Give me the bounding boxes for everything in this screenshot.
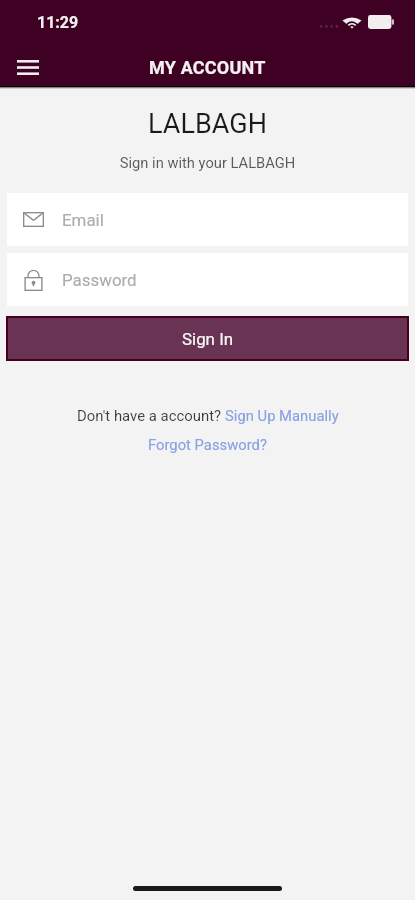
staticText: Password — [62, 270, 137, 290]
staticText: 11:29 — [37, 13, 79, 32]
button[interactable]: Sign In — [8, 318, 407, 359]
staticText: LALBAGH — [0, 108, 415, 140]
button[interactable]: Email — [7, 193, 408, 246]
button[interactable]: Password — [7, 253, 408, 306]
button[interactable]: Forgot Password? — [148, 436, 267, 453]
staticText: Forgot Password? — [148, 436, 267, 453]
staticText: Sign in with your LALBAGH — [0, 154, 415, 171]
staticText: Sign Up Manually — [225, 407, 339, 424]
button[interactable]: Open navigation menu — [9, 48, 47, 86]
staticText: Email — [62, 210, 104, 230]
staticText: Don't have a account? — [77, 407, 225, 424]
staticText: MY ACCOUNT — [149, 57, 266, 78]
button[interactable]: Sign Up Manually — [225, 407, 339, 424]
staticText: Sign In — [182, 329, 234, 349]
